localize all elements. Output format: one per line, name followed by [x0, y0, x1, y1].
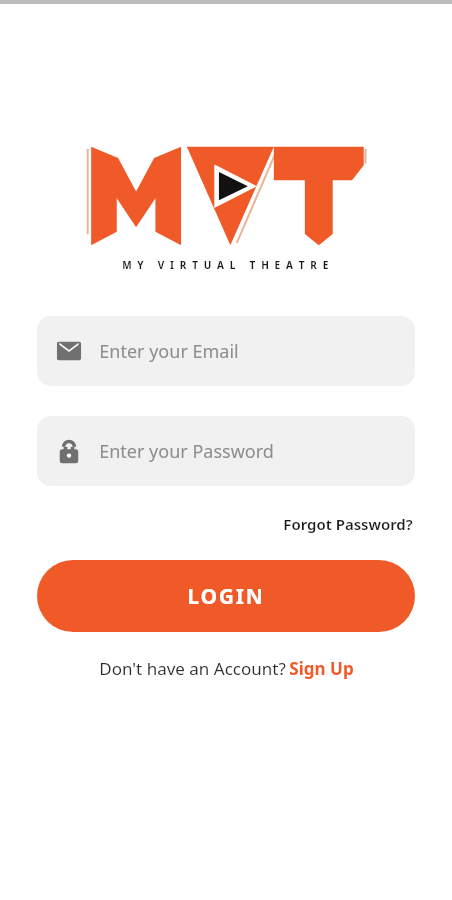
button[interactable]: Forgot Password? [281, 510, 415, 538]
staticText: Forgot Password? [283, 514, 413, 534]
button[interactable]: Password [37, 416, 415, 486]
button[interactable]: Email [37, 316, 415, 386]
staticText: Sign Up [289, 657, 354, 680]
button[interactable]: LOGIN [37, 560, 415, 632]
button[interactable]: Sign Up [288, 654, 355, 683]
staticText: M Y V I R T U A L T H E A T R E [122, 258, 330, 272]
staticText: LOGIN [187, 582, 265, 611]
staticText: Enter your Password [99, 439, 274, 464]
staticText: Don't have an Account? [97, 657, 288, 680]
staticText: Enter your Email [99, 339, 239, 364]
